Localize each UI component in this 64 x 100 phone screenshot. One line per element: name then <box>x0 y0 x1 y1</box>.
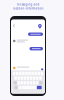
button[interactable]: Share location <box>37 24 42 29</box>
staticText: messaging and <box>16 3 39 6</box>
button[interactable]: Send <box>40 67 44 71</box>
button[interactable]: Back <box>12 23 16 28</box>
staticText: location information <box>12 7 43 10</box>
